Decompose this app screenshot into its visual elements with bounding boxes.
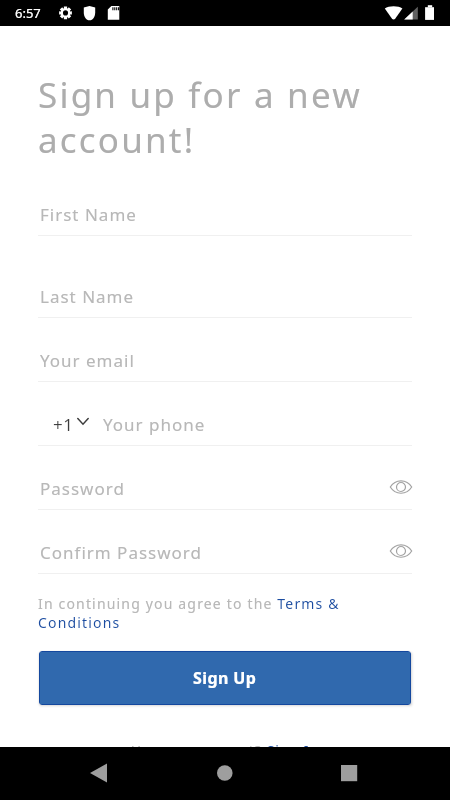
button[interactable]: Home bbox=[200, 747, 249, 800]
staticText: Password bbox=[40, 477, 125, 500]
button[interactable]: Your email bbox=[38, 337, 412, 381]
button[interactable]: Sign Up bbox=[40, 652, 410, 704]
button[interactable]: Password bbox=[38, 465, 412, 509]
staticText: Last Name bbox=[40, 285, 135, 308]
button[interactable]: +1 bbox=[50, 401, 92, 445]
staticText: 6:57 bbox=[15, 4, 41, 22]
staticText: Have an account? Sign In bbox=[0, 741, 450, 760]
staticText: Your phone bbox=[103, 413, 206, 436]
button[interactable]: Show password bbox=[389, 474, 415, 500]
button[interactable]: First Name bbox=[38, 191, 412, 235]
button[interactable]: Confirm Password bbox=[38, 529, 412, 573]
staticText: In continuing you agree to the Terms & C… bbox=[38, 594, 356, 632]
staticText: Your email bbox=[40, 349, 135, 372]
button[interactable]: Back bbox=[74, 747, 123, 800]
button[interactable]: Last Name bbox=[38, 273, 412, 317]
button[interactable]: In continuing you agree to the Terms & C… bbox=[36, 590, 366, 634]
button[interactable]: Show password bbox=[389, 538, 415, 564]
button[interactable]: Recent apps bbox=[325, 747, 374, 800]
staticText: Sign up for a new account! bbox=[38, 71, 362, 164]
button[interactable]: Your phone bbox=[101, 401, 412, 445]
staticText: Sign Up bbox=[193, 667, 257, 689]
staticText: First Name bbox=[40, 203, 137, 226]
staticText: +1 bbox=[53, 413, 74, 436]
button[interactable]: Have an account? Sign In bbox=[0, 736, 450, 766]
staticText: Confirm Password bbox=[40, 541, 202, 564]
